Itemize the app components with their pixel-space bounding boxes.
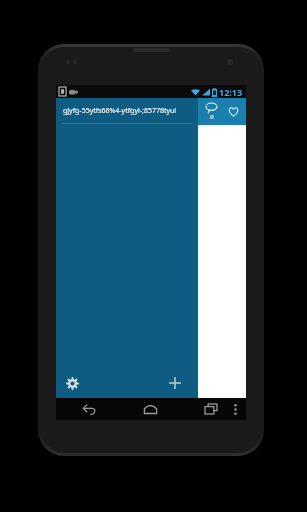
- button[interactable]: Comments: [200, 98, 222, 125]
- button[interactable]: Settings: [61, 372, 83, 394]
- button[interactable]: Favorite: [222, 98, 244, 125]
- button[interactable]: Home: [135, 398, 165, 420]
- button[interactable]: Recent apps: [196, 398, 226, 420]
- button[interactable]: Back: [74, 398, 104, 420]
- button[interactable]: gjyfg-55ytfs66%4-ytfgyi-;85778tyui: [56, 98, 198, 123]
- button[interactable]: More options: [226, 398, 244, 420]
- button[interactable]: Add: [163, 371, 187, 395]
- staticText: 0: [210, 113, 214, 121]
- staticText: gjyfg-55ytfs66%4-ytfgyi-;85778tyui: [63, 106, 177, 116]
- staticText: 12:13: [219, 86, 243, 98]
